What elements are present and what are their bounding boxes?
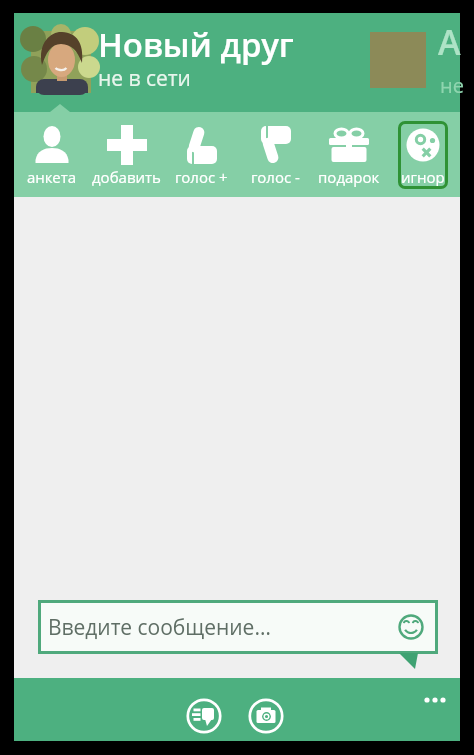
staticText: не <box>440 72 464 99</box>
staticText: игнор <box>401 167 445 187</box>
button[interactable]: анкета <box>27 123 77 187</box>
button[interactable] <box>248 698 284 734</box>
staticText: добавить <box>92 167 161 187</box>
staticText: голос + <box>175 167 228 187</box>
button[interactable]: Введите сообщение… <box>38 600 438 654</box>
button[interactable] <box>186 698 222 734</box>
button[interactable]: добавить <box>92 123 161 187</box>
staticText: не в сети <box>98 64 191 93</box>
staticText: А <box>438 19 461 65</box>
button[interactable] <box>397 613 425 641</box>
button[interactable] <box>31 31 91 93</box>
staticText: Введите сообщение… <box>48 613 271 642</box>
staticText: подарок <box>318 167 380 187</box>
button[interactable]: игнор <box>401 123 445 187</box>
button[interactable]: голос - <box>251 123 300 187</box>
button[interactable]: голос + <box>175 123 228 187</box>
button[interactable]: подарок <box>318 123 380 187</box>
staticText: голос - <box>251 167 300 187</box>
staticText: Новый друг <box>98 22 294 67</box>
button[interactable] <box>424 695 450 705</box>
staticText: анкета <box>27 167 77 187</box>
